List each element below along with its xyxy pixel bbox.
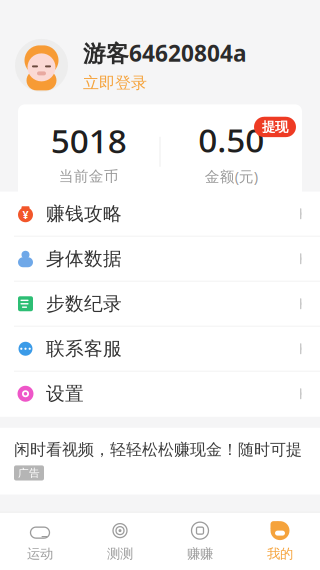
button[interactable]: 5018 [18, 118, 159, 185]
button[interactable]: 测测 [80, 520, 160, 562]
staticText: 步数纪录 [46, 292, 122, 315]
staticText: 广告 [18, 466, 40, 479]
button[interactable]: 联系客服 [0, 327, 320, 372]
staticText: 测测 [107, 546, 133, 562]
button[interactable]: Avatar [15, 39, 68, 92]
button[interactable]: 设置 [0, 372, 320, 417]
staticText: 设置 [46, 382, 84, 405]
staticText: ¥ [22, 208, 28, 222]
staticText: 游客64620804a [83, 38, 247, 68]
button[interactable]: 步数纪录 [0, 282, 320, 327]
staticText: 0.50 [198, 117, 264, 162]
staticText: 5018 [51, 118, 127, 162]
staticText: 赚赚 [187, 546, 213, 562]
staticText: 立即登录 [83, 73, 147, 93]
button[interactable]: 0.50 [160, 117, 302, 186]
staticText: 金额(元) [205, 167, 258, 186]
staticText: 联系客服 [46, 337, 122, 360]
button[interactable]: 提现 [254, 117, 296, 137]
staticText: 当前金币 [59, 167, 119, 185]
staticText: 闲时看视频，轻轻松松赚现金！随时可提 [14, 440, 302, 459]
staticText: 运动 [27, 546, 53, 562]
button[interactable]: ¥ [0, 192, 320, 237]
staticText: 我的 [267, 546, 293, 562]
staticText: 赚钱攻略 [46, 202, 122, 225]
button[interactable]: 闲时看视频，轻轻松松赚现金！随时可提 [0, 428, 320, 495]
staticText: 提现 [262, 119, 288, 135]
button[interactable]: 立即登录 [83, 73, 147, 93]
button[interactable]: 运动 [0, 520, 80, 562]
button[interactable]: 赚赚 [160, 520, 240, 562]
button[interactable]: 身体数据 [0, 237, 320, 282]
staticText: 身体数据 [46, 247, 122, 270]
button[interactable]: 我的 [240, 520, 320, 562]
